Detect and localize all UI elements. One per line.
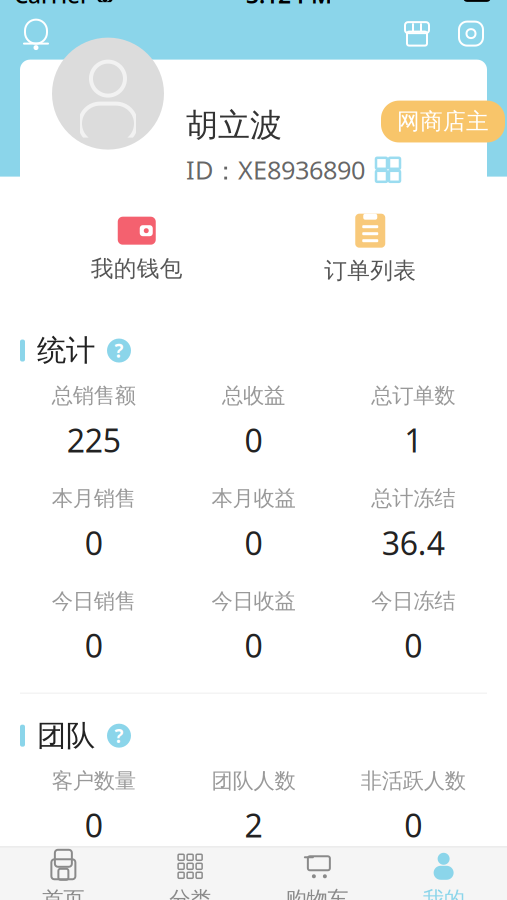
button[interactable]: 分类 — [127, 846, 254, 900]
button[interactable]: QR Code — [375, 157, 401, 183]
staticText: 网商店主 — [397, 108, 489, 135]
button[interactable]: Help — [107, 338, 131, 362]
staticText: 225 — [67, 419, 121, 461]
staticText: 总收益 — [222, 383, 285, 409]
staticText: 团队 — [37, 718, 95, 754]
staticText: 团队人数 — [211, 768, 295, 794]
staticText: 订单列表 — [324, 257, 416, 284]
staticText: 36.4 — [382, 521, 445, 564]
button[interactable]: 订单列表 — [253, 213, 487, 284]
staticText: 购物车 — [285, 886, 348, 900]
staticText: 总订单数 — [371, 383, 455, 409]
button[interactable]: Settings — [449, 12, 493, 56]
staticText: 0 — [85, 624, 103, 667]
staticText: 本月收益 — [211, 485, 295, 511]
staticText: 我的 — [423, 886, 465, 900]
button[interactable]: Help — [107, 724, 131, 748]
staticText: 1 — [404, 419, 422, 461]
button[interactable]: 购物车 — [253, 846, 380, 900]
staticText: 本月销售 — [52, 485, 136, 511]
staticText: 统计 — [37, 332, 95, 368]
staticText: Carrier — [14, 0, 90, 10]
staticText: 今日收益 — [211, 588, 295, 614]
staticText: 0 — [404, 624, 422, 667]
staticText: 首页 — [42, 886, 84, 900]
button[interactable]: 网商店主 — [381, 101, 505, 142]
staticText: 今日冻结 — [371, 588, 455, 614]
staticText: 总计冻结 — [371, 485, 455, 511]
staticText: 分类 — [169, 886, 211, 900]
staticText: ID：XE8936890 — [186, 153, 365, 187]
staticText: 2 — [244, 804, 262, 846]
button[interactable]: 我的钱包 — [20, 215, 253, 282]
button[interactable]: Shop — [395, 12, 439, 56]
staticText: 0 — [244, 521, 262, 564]
staticText: 我的钱包 — [91, 255, 183, 282]
staticText: 0 — [85, 521, 103, 564]
staticText: 0 — [404, 804, 422, 846]
staticText: 今日销售 — [52, 588, 136, 614]
staticText: 0 — [244, 624, 262, 667]
button[interactable]: 首页 — [0, 846, 127, 900]
staticText: 3:12 PM — [246, 0, 332, 10]
button[interactable]: 我的 — [380, 846, 507, 900]
staticText: 胡立波 — [186, 106, 282, 145]
staticText: 非活跃人数 — [361, 768, 466, 794]
staticText: ? — [114, 338, 123, 363]
staticText: 客户数量 — [52, 768, 136, 794]
staticText: ? — [114, 723, 123, 748]
staticText: 总销售额 — [52, 383, 136, 409]
staticText: 0 — [244, 419, 262, 461]
button[interactable]: Notifications — [14, 12, 58, 56]
staticText: 0 — [85, 804, 103, 846]
